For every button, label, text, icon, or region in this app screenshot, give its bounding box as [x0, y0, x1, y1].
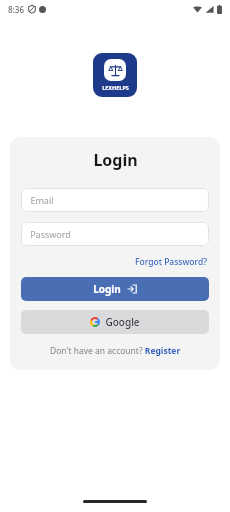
staticText: Password — [30, 228, 71, 240]
button[interactable]: Forgot Password? — [133, 255, 209, 269]
staticText: Forgot Password? — [135, 256, 207, 268]
staticText: Login — [93, 282, 121, 296]
button[interactable]: Email — [21, 188, 209, 212]
button[interactable]: Password — [21, 222, 209, 246]
other: LexHelps logo — [93, 53, 137, 97]
button[interactable]: Don't have an account? Register — [48, 344, 183, 358]
staticText: Login — [93, 149, 138, 171]
staticText: Don't have an account? Register — [50, 345, 181, 357]
button[interactable]: Login — [21, 277, 209, 301]
staticText: LEXHELPS — [102, 84, 129, 91]
staticText: Google — [105, 315, 140, 329]
staticText: Email — [30, 194, 54, 206]
staticText: 8:36 — [8, 4, 24, 15]
button[interactable]: Google — [21, 310, 209, 334]
other: Login — [127, 284, 137, 294]
